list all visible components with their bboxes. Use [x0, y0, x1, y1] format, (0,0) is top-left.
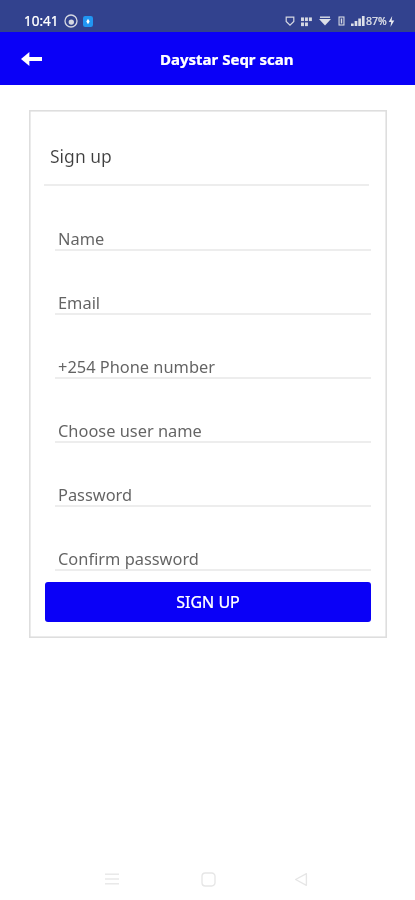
staticText: SIGN UP	[176, 591, 240, 613]
button[interactable]: Choose user name	[55, 407, 371, 453]
staticText: Sign up	[50, 144, 112, 168]
staticText: Email	[58, 291, 101, 313]
button[interactable]: Confirm password	[55, 535, 371, 581]
button[interactable]: Home	[188, 859, 228, 899]
button[interactable]: Back	[281, 859, 321, 899]
staticText: Choose user name	[58, 419, 202, 441]
button[interactable]: SIGN UP	[45, 582, 371, 622]
button[interactable]: +254 Phone number	[55, 343, 371, 389]
staticText: Name	[58, 227, 105, 249]
button[interactable]: Name	[55, 215, 371, 261]
staticText: +254 Phone number	[58, 355, 216, 377]
staticText: Confirm password	[58, 547, 199, 569]
staticText: Daystar Seqr scan	[160, 49, 294, 69]
staticText: 87%	[366, 14, 387, 28]
button[interactable]: Back	[7, 35, 55, 83]
staticText: 10:41	[24, 12, 59, 30]
button[interactable]: Recent apps	[92, 859, 132, 899]
button[interactable]: Email	[55, 279, 371, 325]
staticText: Password	[58, 483, 133, 505]
button[interactable]: Password	[55, 471, 371, 517]
